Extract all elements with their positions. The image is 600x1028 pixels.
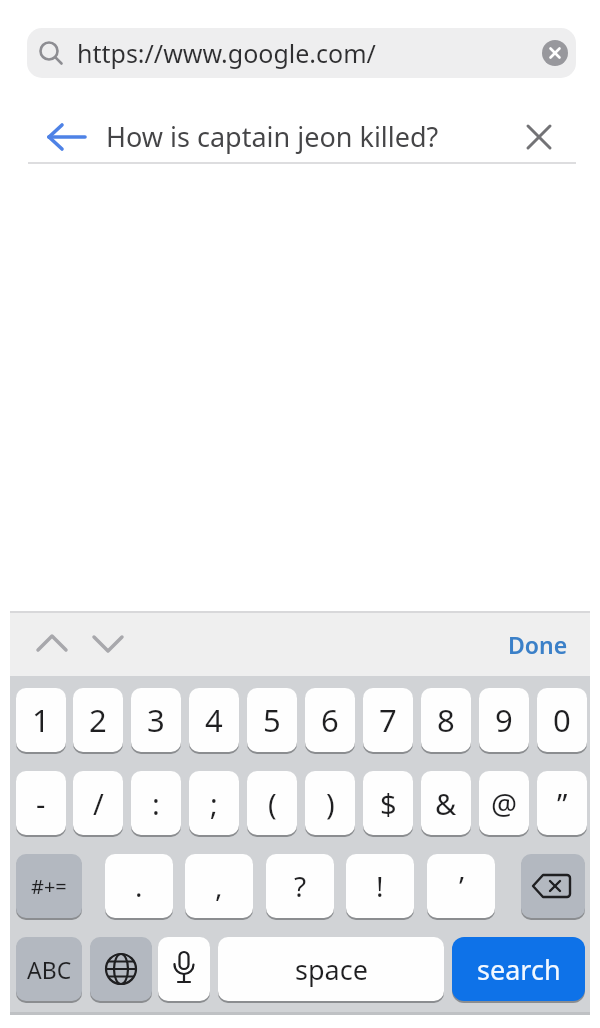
staticText: space (295, 951, 368, 988)
button[interactable]: ; (189, 771, 239, 835)
button[interactable] (521, 854, 585, 918)
button[interactable]: - (16, 771, 66, 835)
staticText: : (152, 784, 160, 823)
staticText: search (477, 951, 561, 988)
button[interactable]: space (218, 937, 444, 1001)
button[interactable]: 6 (305, 688, 355, 752)
button[interactable] (527, 125, 551, 149)
button[interactable]: ( (247, 771, 297, 835)
staticText: 7 (379, 699, 397, 741)
button[interactable]: 4 (189, 688, 239, 752)
staticText: ; (210, 784, 218, 823)
staticText: 8 (437, 699, 455, 741)
staticText: 3 (147, 699, 165, 741)
staticText: 6 (321, 699, 339, 741)
button[interactable]: 2 (73, 688, 123, 752)
staticText: Done (508, 629, 568, 660)
button[interactable]: 0 (537, 688, 587, 752)
button[interactable]: Done (495, 613, 580, 676)
button[interactable]: , (185, 854, 253, 918)
button[interactable]: $ (363, 771, 413, 835)
staticText: - (36, 784, 46, 823)
button[interactable]: & (421, 771, 471, 835)
button[interactable]: 8 (421, 688, 471, 752)
staticText: ? (294, 867, 307, 905)
button[interactable]: ? (266, 854, 334, 918)
button[interactable]: : (131, 771, 181, 835)
staticText: https://www.google.com/ (77, 36, 376, 70)
button[interactable] (158, 937, 210, 1001)
button[interactable]: 9 (479, 688, 529, 752)
button[interactable] (37, 635, 67, 651)
button[interactable]: search (452, 937, 585, 1001)
staticText: @ (491, 784, 518, 823)
button[interactable]: 1 (16, 688, 66, 752)
staticText: , (215, 867, 223, 905)
button[interactable]: ABC (16, 937, 82, 1001)
staticText: ( (268, 784, 277, 823)
staticText: & (435, 784, 457, 823)
staticText: 4 (205, 699, 223, 741)
button[interactable]: ’ (427, 854, 495, 918)
staticText: ) (326, 784, 335, 823)
staticText: ! (376, 867, 384, 905)
button[interactable]: 3 (131, 688, 181, 752)
staticText: $ (380, 784, 397, 823)
button[interactable] (93, 636, 123, 652)
staticText: . (135, 867, 143, 905)
staticText: 0 (553, 699, 571, 741)
button[interactable]: ) (305, 771, 355, 835)
button[interactable]: https://www.google.com/ (27, 28, 576, 78)
button[interactable]: ! (346, 854, 414, 918)
button[interactable]: @ (479, 771, 529, 835)
staticText: ’ (459, 867, 464, 905)
staticText: 2 (89, 699, 107, 741)
button[interactable]: How is captain jeon killed? (0, 110, 600, 163)
staticText: 5 (263, 699, 281, 741)
staticText: ” (557, 784, 568, 823)
button[interactable]: . (105, 854, 173, 918)
button[interactable]: #+= (16, 854, 82, 918)
button[interactable]: 7 (363, 688, 413, 752)
staticText: 9 (495, 699, 513, 741)
button[interactable]: 5 (247, 688, 297, 752)
staticText: ABC (27, 954, 72, 985)
button[interactable] (542, 40, 568, 66)
staticText: / (93, 784, 104, 823)
button[interactable]: ” (537, 771, 587, 835)
staticText: 1 (32, 699, 50, 741)
button[interactable]: / (73, 771, 123, 835)
button[interactable] (90, 937, 152, 1001)
staticText: #+= (31, 873, 67, 900)
staticText: How is captain jeon killed? (106, 118, 439, 155)
